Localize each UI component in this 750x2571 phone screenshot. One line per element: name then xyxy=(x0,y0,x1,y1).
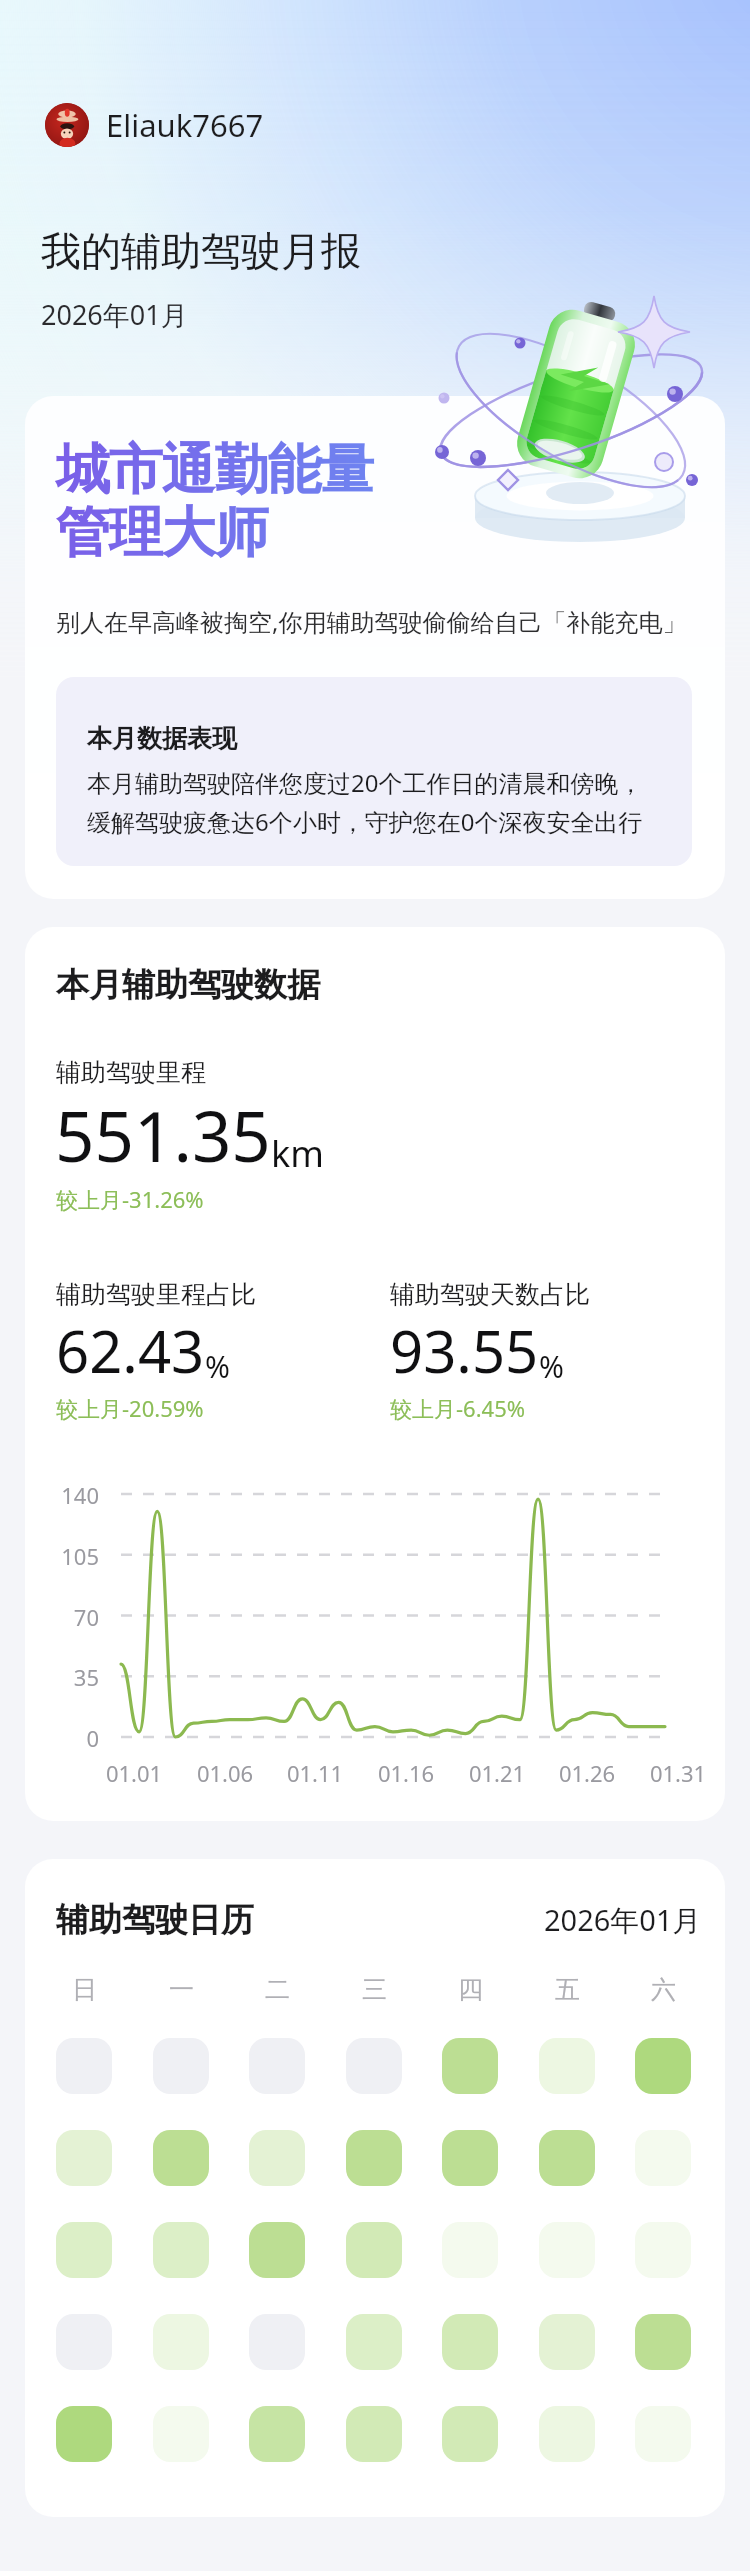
button[interactable] xyxy=(153,2314,209,2370)
staticText: 辅助驾驶里程 xyxy=(56,1057,206,1088)
staticText: 辅助驾驶日历 xyxy=(56,1899,254,1941)
button[interactable] xyxy=(346,2406,402,2462)
staticText: 一 xyxy=(169,1974,194,2005)
staticText: 35 xyxy=(29,1662,99,1692)
staticText: 551.35 xyxy=(55,1088,271,1182)
staticText: Eliauk7667 xyxy=(106,104,264,146)
button[interactable] xyxy=(56,2038,112,2094)
staticText: 140 xyxy=(29,1480,99,1510)
button[interactable] xyxy=(56,2314,112,2370)
staticText: 01.26 xyxy=(545,1758,629,1788)
staticText: 0 xyxy=(29,1723,99,1753)
staticText: 01.16 xyxy=(364,1758,448,1788)
button[interactable] xyxy=(249,2406,305,2462)
staticText: % xyxy=(205,1346,230,1387)
button[interactable] xyxy=(539,2130,595,2186)
staticText: 日 xyxy=(72,1974,97,2005)
button[interactable] xyxy=(442,2222,498,2278)
staticText: 01.06 xyxy=(183,1758,267,1788)
staticText: 别人在早高峰被掏空,你用辅助驾驶偷偷给自己「补能充电」 xyxy=(56,605,687,638)
button[interactable] xyxy=(635,2222,691,2278)
button[interactable] xyxy=(249,2314,305,2370)
staticText: 五 xyxy=(555,1974,580,2005)
button[interactable] xyxy=(346,2130,402,2186)
button[interactable] xyxy=(539,2222,595,2278)
button[interactable] xyxy=(442,2038,498,2094)
staticText: 93.55 xyxy=(390,1311,539,1390)
staticText: 较上月-31.26% xyxy=(56,1184,204,1214)
staticText: 105 xyxy=(29,1541,99,1571)
staticText: 六 xyxy=(651,1974,676,2005)
staticText: 01.31 xyxy=(636,1758,720,1788)
button[interactable] xyxy=(153,2038,209,2094)
button[interactable] xyxy=(539,2314,595,2370)
button[interactable] xyxy=(346,2314,402,2370)
button[interactable]: Eliauk7667 xyxy=(45,103,264,147)
staticText: km xyxy=(271,1129,324,1178)
button[interactable] xyxy=(346,2222,402,2278)
button[interactable] xyxy=(153,2130,209,2186)
staticText: 01.01 xyxy=(92,1758,176,1788)
button[interactable] xyxy=(442,2406,498,2462)
staticText: 城市通勤能量 管理大师 xyxy=(56,436,373,567)
button[interactable] xyxy=(346,2038,402,2094)
button[interactable] xyxy=(249,2038,305,2094)
staticText: 70 xyxy=(29,1602,99,1632)
button[interactable] xyxy=(539,2038,595,2094)
button[interactable] xyxy=(635,2406,691,2462)
button[interactable] xyxy=(249,2222,305,2278)
button[interactable] xyxy=(249,2130,305,2186)
staticText: 四 xyxy=(458,1974,483,2005)
staticText: 本月数据表现 xyxy=(87,723,237,754)
button[interactable] xyxy=(442,2314,498,2370)
staticText: 本月辅助驾驶数据 xyxy=(56,964,320,1006)
staticText: 我的辅助驾驶月报 xyxy=(41,226,361,276)
button[interactable] xyxy=(56,2130,112,2186)
button[interactable] xyxy=(56,2222,112,2278)
button[interactable] xyxy=(539,2406,595,2462)
staticText: 2026年01月 xyxy=(544,1900,702,1940)
staticText: 三 xyxy=(362,1974,387,2005)
staticText: 较上月-6.45% xyxy=(390,1393,526,1423)
staticText: 2026年01月 xyxy=(41,296,188,333)
button[interactable] xyxy=(635,2130,691,2186)
staticText: 01.21 xyxy=(455,1758,539,1788)
staticText: 62.43 xyxy=(56,1311,205,1390)
staticText: 辅助驾驶里程占比 xyxy=(56,1279,256,1310)
staticText: 较上月-20.59% xyxy=(56,1393,204,1423)
button[interactable] xyxy=(635,2038,691,2094)
button[interactable] xyxy=(442,2130,498,2186)
button[interactable] xyxy=(153,2406,209,2462)
button[interactable] xyxy=(635,2314,691,2370)
staticText: % xyxy=(539,1346,564,1387)
button[interactable] xyxy=(153,2222,209,2278)
button[interactable] xyxy=(56,2406,112,2462)
staticText: 本月辅助驾驶陪伴您度过20个工作日的清晨和傍晚， 缓解驾驶疲惫达6个小时，守护您… xyxy=(87,766,643,838)
staticText: 辅助驾驶天数占比 xyxy=(390,1279,590,1310)
staticText: 01.11 xyxy=(273,1758,357,1788)
staticText: 二 xyxy=(265,1974,290,2005)
